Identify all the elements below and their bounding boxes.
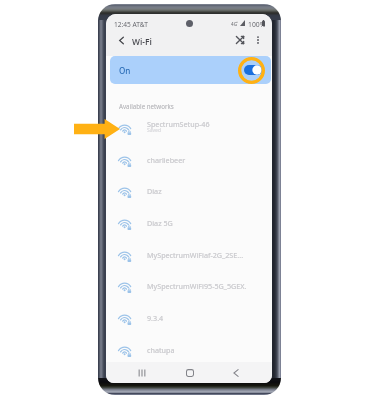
staticText: On (119, 65, 131, 76)
button[interactable]: chatupa (106, 334, 272, 366)
staticText: 12:45 AT&T (114, 20, 148, 29)
button[interactable]: 9.3.4 (106, 302, 272, 334)
button[interactable]: Wi-Fi Direct (233, 33, 247, 47)
staticText: 4G (231, 21, 237, 27)
button[interactable]: Back (227, 364, 245, 382)
staticText: chatupa (147, 345, 175, 355)
staticText: 100% (248, 20, 266, 29)
button[interactable]: On (110, 56, 271, 84)
button[interactable]: MySpectrumWiFi95-5G_5GEX. (106, 270, 272, 302)
staticText: MySpectrumWiFiaf-2G_2SE... (147, 250, 244, 260)
button[interactable]: MySpectrumWiFiaf-2G_2SE... (106, 239, 272, 271)
staticText: Saved (147, 127, 161, 134)
staticText: Diaz 5G (147, 218, 173, 228)
staticText: + (236, 19, 239, 24)
button[interactable]: Diaz (106, 175, 272, 207)
staticText: SpectrumSetup-46 (147, 119, 210, 129)
button[interactable]: SpectrumSetup-46 (106, 112, 272, 144)
staticText: 9.3.4 (147, 313, 164, 323)
button[interactable]: More options (251, 33, 265, 47)
button[interactable]: Home (181, 364, 199, 382)
staticText: Wi-Fi (132, 36, 152, 47)
button[interactable]: charliebeer (106, 144, 272, 176)
staticText: MySpectrumWiFi95-5G_5GEX. (147, 281, 247, 291)
button[interactable]: Diaz 5G (106, 207, 272, 239)
staticText: Available networks (119, 102, 174, 110)
button[interactable]: Recent apps (133, 364, 151, 382)
button[interactable]: Navigate up (114, 33, 129, 48)
staticText: charliebeer (147, 155, 186, 165)
staticText: Diaz (147, 186, 162, 196)
